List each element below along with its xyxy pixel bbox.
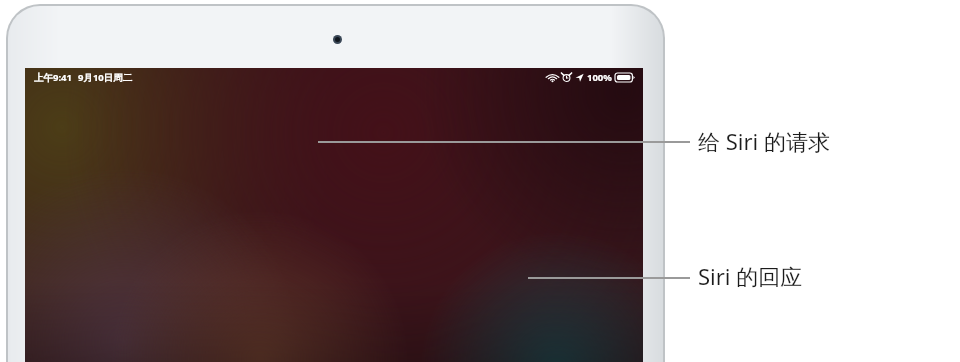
staticText: Siri 的回应 bbox=[698, 261, 803, 291]
staticText: 上午9:41 bbox=[34, 71, 72, 84]
staticText: 给 Siri 的请求 bbox=[698, 126, 830, 156]
staticText: 9月10日周二 bbox=[78, 71, 133, 84]
staticText: 100% bbox=[587, 71, 612, 84]
